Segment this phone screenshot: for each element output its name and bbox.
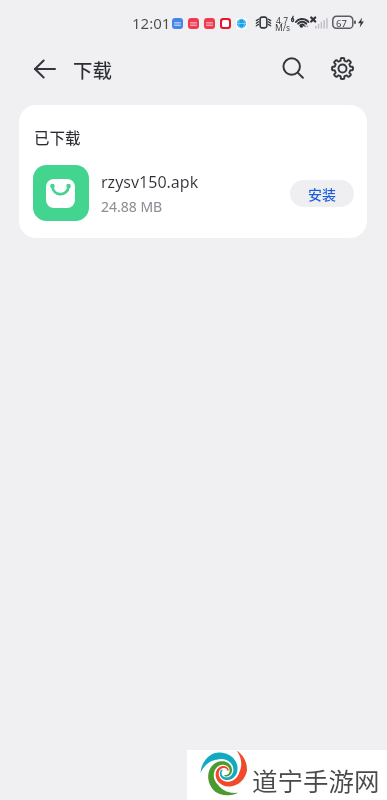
- staticText: 12:01: [132, 13, 171, 33]
- button[interactable]: 安装: [290, 180, 354, 207]
- button[interactable]: Back: [22, 46, 67, 91]
- button[interactable]: Search: [271, 47, 315, 91]
- staticText: 道宁手游网: [252, 761, 380, 798]
- staticText: 下载: [73, 55, 113, 83]
- button[interactable]: Settings: [320, 46, 364, 90]
- staticText: rzysv150.apk: [101, 171, 199, 193]
- staticText: 67: [336, 17, 347, 30]
- staticText: 安装: [308, 184, 336, 204]
- staticText: 24.88 MB: [101, 197, 163, 216]
- staticText: M/s: [275, 22, 291, 34]
- staticText: 已下载: [34, 126, 81, 148]
- staticText: 4.7: [276, 15, 289, 27]
